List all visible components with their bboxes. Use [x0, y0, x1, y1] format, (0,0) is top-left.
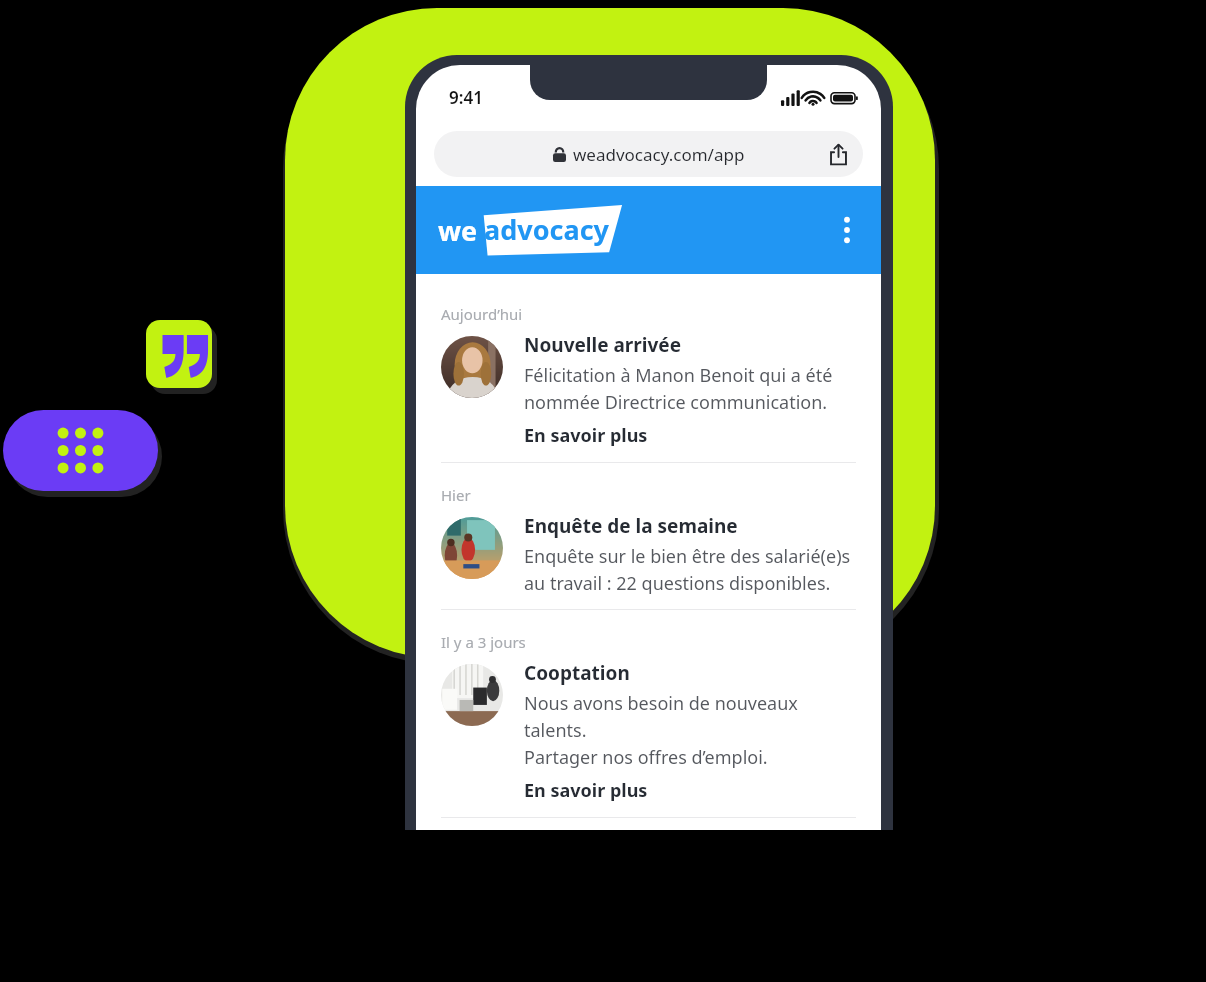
staticText: Enquête sur le bien être des salarié(e)s… [524, 544, 851, 595]
button[interactable]: En savoir plus [524, 778, 648, 803]
button[interactable]: weadvocacy.com/app [434, 131, 863, 177]
staticText: Félicitation à Manon Benoit qui a été no… [524, 363, 833, 414]
staticText: Cooptation [524, 660, 630, 686]
staticText: Enquête de la semaine [524, 513, 738, 539]
button[interactable]: Enquête de la semaine [416, 511, 881, 609]
staticText: weadvocacy.com/app [573, 143, 745, 166]
staticText: Il y a 3 jours [441, 632, 526, 652]
button[interactable]: Cooptation [416, 658, 881, 817]
staticText: Nous avons besoin de nouveaux talents. P… [524, 691, 861, 769]
button[interactable]: we [438, 212, 609, 249]
staticText: 9:41 [449, 86, 483, 109]
staticText: advocacy [484, 211, 609, 248]
other: Share [830, 144, 847, 165]
staticText: En savoir plus [524, 778, 648, 803]
staticText: we [438, 212, 478, 249]
staticText: En savoir plus [524, 423, 648, 448]
button[interactable]: Nouvelle arrivée [416, 330, 881, 462]
staticText: Hier [441, 485, 471, 505]
staticText: Aujourd’hui [441, 304, 523, 324]
button[interactable]: More options [835, 214, 859, 246]
staticText: Nouvelle arrivée [524, 332, 682, 358]
button[interactable]: En savoir plus [524, 423, 648, 448]
